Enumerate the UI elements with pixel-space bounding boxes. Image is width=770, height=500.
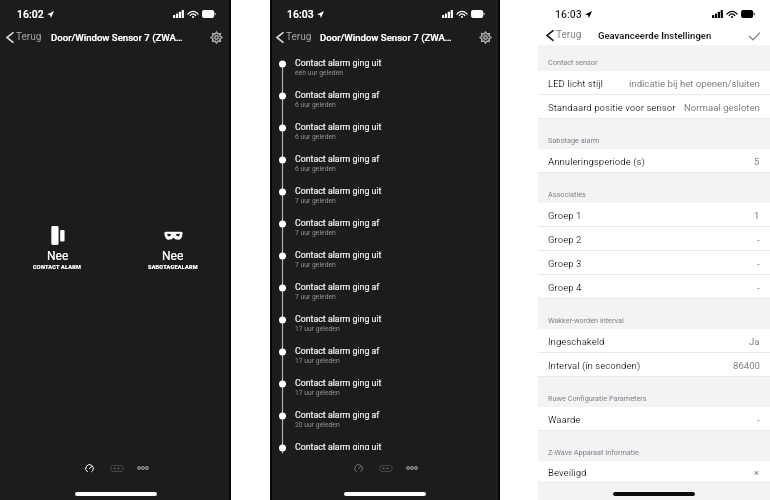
button[interactable]: Contact alarm ging af [270, 340, 500, 372]
button[interactable]: Contact alarm ging af [270, 212, 500, 244]
staticText: Ruwe Configuratie Parameters [548, 394, 647, 403]
staticText: 16:03 [287, 8, 314, 20]
button[interactable]: Contact alarm ging af [270, 84, 500, 116]
staticText: SABOTAGEALARM [148, 264, 198, 270]
staticText: LED licht stijl [548, 78, 603, 89]
button[interactable]: Nee [23, 223, 92, 273]
button[interactable]: Contact alarm ging af [270, 404, 500, 436]
staticText: Contact alarm ging uit [295, 442, 382, 450]
staticText: Contact alarm ging af [295, 346, 380, 356]
button[interactable]: Contact alarm ging af [270, 148, 500, 180]
staticText: indicatie bij het openen/sluiten [629, 78, 760, 89]
staticText: CONTACT ALARM [33, 264, 82, 270]
button[interactable]: More options [132, 457, 154, 479]
staticText: 17 uur geleden [295, 389, 340, 397]
staticText: Normaal gesloten [684, 102, 760, 113]
staticText: 6 uur geleden [295, 133, 336, 141]
staticText: 7 uur geleden [295, 261, 336, 269]
button[interactable]: Status [347, 457, 369, 479]
button[interactable]: Confirm [746, 28, 762, 44]
staticText: 1 [754, 210, 760, 221]
button[interactable]: Status [78, 457, 100, 479]
staticText: 20 uur geleden [295, 421, 340, 429]
button[interactable]: Settings [477, 29, 493, 45]
staticText: Waarde [548, 414, 581, 425]
button[interactable]: Contact alarm ging uit [270, 116, 500, 148]
button[interactable]: Terug [546, 29, 582, 41]
staticText: Terug [16, 31, 42, 43]
button[interactable]: Contact alarm ging uit [270, 372, 500, 404]
staticText: Groep 2 [548, 234, 582, 245]
staticText: - [757, 282, 760, 293]
staticText: Contact alarm ging uit [295, 186, 382, 196]
button[interactable]: Contact alarm ging uit [270, 436, 500, 450]
staticText: - [757, 414, 760, 425]
staticText: Terug [556, 29, 582, 41]
staticText: 7 uur geleden [295, 293, 336, 301]
staticText: 5 [754, 156, 760, 167]
staticText: Door/Window Sensor 7 (ZWA… [320, 32, 452, 43]
staticText: Contact alarm ging uit [295, 58, 382, 68]
staticText: Ingeschakeld [548, 336, 605, 347]
button[interactable]: Interval (in seconden) [538, 353, 770, 377]
button[interactable]: Contact alarm ging uit [270, 308, 500, 340]
staticText: Contact alarm ging af [295, 90, 380, 100]
staticText: Beveiligd [548, 467, 587, 478]
button[interactable]: Ingeschakeld [538, 329, 770, 353]
button[interactable]: More options [401, 457, 423, 479]
button[interactable]: Terug [276, 31, 312, 43]
staticText: Groep 4 [548, 282, 582, 293]
staticText: Sabotage alarm [548, 136, 600, 145]
button[interactable]: Groep 2 [538, 227, 770, 251]
staticText: 17 uur geleden [295, 325, 340, 333]
staticText: Z-Wave Apparaat Informatie [548, 448, 639, 457]
button[interactable]: Waarde [538, 407, 770, 431]
button[interactable]: Groep 3 [538, 251, 770, 275]
staticText: Contact alarm ging af [295, 218, 380, 228]
staticText: 7 uur geleden [295, 197, 336, 205]
staticText: Groep 3 [548, 258, 582, 269]
staticText: Contact alarm ging af [295, 410, 380, 420]
button[interactable]: Settings [208, 29, 224, 45]
staticText: Groep 1 [548, 210, 582, 221]
staticText: - [757, 234, 760, 245]
staticText: 7 uur geleden [295, 229, 336, 237]
staticText: 16:03 [555, 8, 582, 20]
staticText: Door/Window Sensor 7 (ZWA… [51, 32, 183, 43]
staticText: 17 uur geleden [295, 357, 340, 365]
staticText: 6 uur geleden [295, 165, 336, 173]
button[interactable]: LED licht stijl [538, 71, 770, 95]
staticText: Associaties [548, 190, 586, 199]
staticText: Nee [162, 249, 184, 263]
staticText: Contact alarm ging af [295, 154, 380, 164]
staticText: Wakker-worden interval [548, 316, 624, 325]
button[interactable]: Terug [6, 31, 42, 43]
staticText: Contact alarm ging uit [295, 314, 382, 324]
button[interactable]: Contact alarm ging uit [270, 244, 500, 276]
staticText: × [754, 467, 760, 478]
staticText: Contact alarm ging uit [295, 378, 382, 388]
button[interactable]: Beveiligd [538, 461, 770, 483]
staticText: Interval (in seconden) [548, 360, 641, 371]
staticText: 6 uur geleden [295, 101, 336, 109]
button[interactable]: Nee [138, 223, 208, 273]
staticText: 16:02 [17, 8, 44, 20]
staticText: Nee [47, 249, 69, 263]
button[interactable]: Contact alarm ging uit [270, 52, 500, 84]
button[interactable]: Groep 4 [538, 275, 770, 299]
staticText: Contact sensor [548, 58, 598, 67]
staticText: Terug [286, 31, 312, 43]
staticText: Contact alarm ging uit [295, 250, 382, 260]
button[interactable]: Device [375, 457, 397, 479]
button[interactable]: Annuleringsperiode (s) [538, 149, 770, 173]
button[interactable]: Device [106, 457, 128, 479]
button[interactable]: Groep 1 [538, 203, 770, 227]
staticText: Contact alarm ging af [295, 282, 380, 292]
staticText: Geavanceerde Instellingen [598, 30, 712, 41]
button[interactable]: Standaard positie voor sensor [538, 95, 770, 119]
button[interactable]: Contact alarm ging af [270, 276, 500, 308]
button[interactable]: Contact alarm ging uit [270, 180, 500, 212]
staticText: Standaard positie voor sensor [548, 102, 676, 113]
staticText: Annuleringsperiode (s) [548, 156, 645, 167]
staticText: 86400 [733, 360, 760, 371]
